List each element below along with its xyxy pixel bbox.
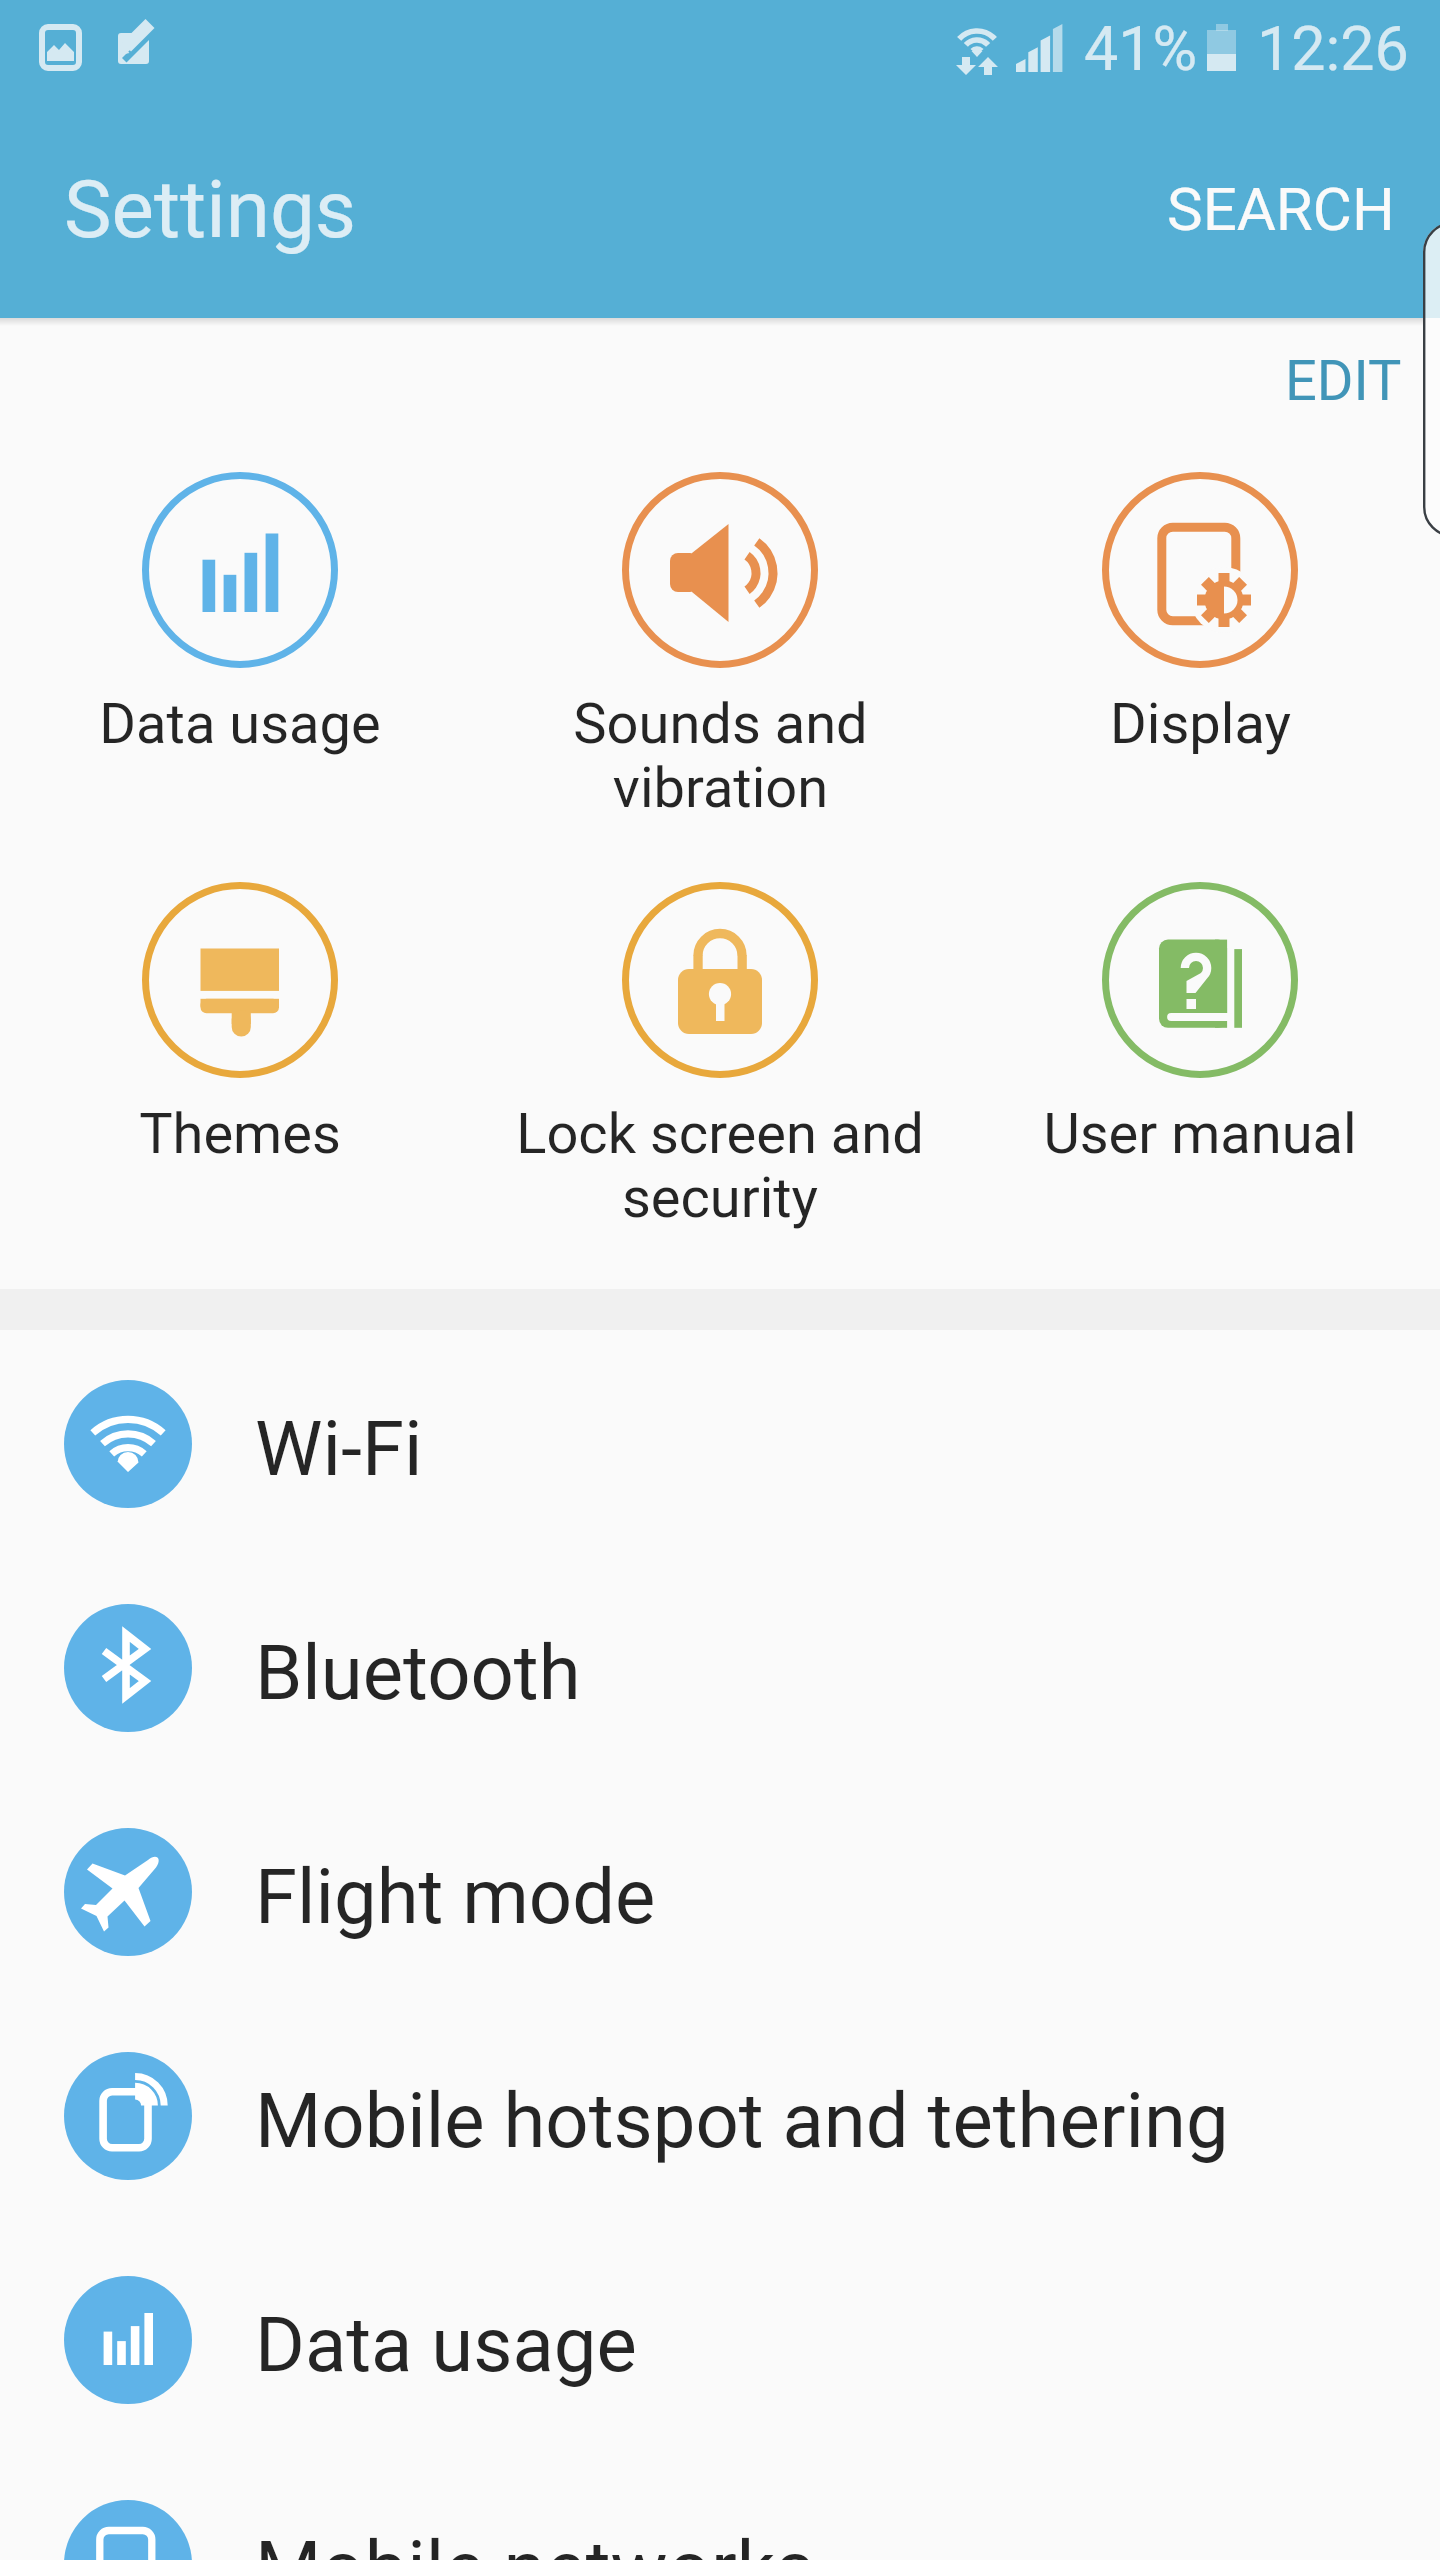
staticText: Mobile networks [255,2524,815,2560]
staticText: User manual [1043,1101,1357,1167]
staticText: Display [1110,691,1291,757]
button[interactable]: Lock screen and security [480,882,960,1230]
button[interactable]: Mobile hotspot and tethering [0,2004,1440,2228]
staticText: 12:26 [1257,13,1409,84]
button[interactable]: Mobile networks [0,2452,1440,2560]
button[interactable]: Data usage [0,472,480,757]
button[interactable]: Themes [0,882,480,1167]
button[interactable]: Display [960,472,1440,757]
button[interactable]: User manual [960,882,1440,1167]
staticText: Flight mode [255,1852,656,1941]
button[interactable]: Data usage [0,2228,1440,2452]
staticText: 41% [1084,13,1198,84]
staticText: SEARCH [1167,174,1395,244]
button[interactable]: Bluetooth [0,1556,1440,1780]
staticText: Bluetooth [255,1628,581,1717]
staticText: Data usage [99,691,381,757]
staticText: Data usage [255,2300,637,2389]
staticText: Lock screen and security [516,1101,924,1230]
button[interactable]: Sounds and vibration [480,472,960,820]
staticText: EDIT [1285,348,1402,414]
staticText: Themes [139,1101,341,1167]
button[interactable]: Edge panel handle [1423,222,1440,537]
button[interactable]: SEARCH [1139,156,1423,262]
staticText: Settings [64,163,357,257]
button[interactable]: Wi-Fi [0,1332,1440,1556]
button[interactable]: EDIT [1261,332,1426,430]
button[interactable]: Flight mode [0,1780,1440,2004]
staticText: Sounds and vibration [573,691,868,820]
staticText: Mobile hotspot and tethering [255,2076,1229,2165]
staticText: Wi-Fi [255,1404,423,1493]
